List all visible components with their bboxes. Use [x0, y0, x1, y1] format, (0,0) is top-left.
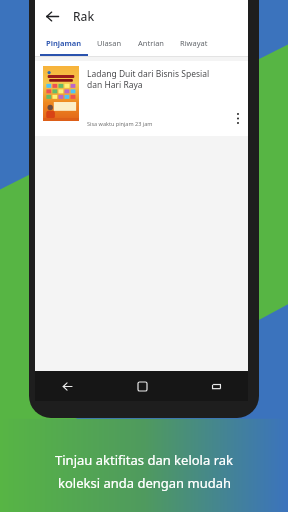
button[interactable]: Ladang Duit dari Bisnis Spesial dan Hari… — [35, 61, 248, 136]
button[interactable]: Home — [132, 376, 152, 396]
staticText: Sisa waktu pinjam 23 jam — [87, 120, 153, 127]
staticText: Antrian — [138, 38, 165, 48]
staticText: Rak — [73, 8, 95, 24]
button[interactable]: Back — [40, 4, 64, 28]
button[interactable]: Back — [57, 376, 77, 396]
button[interactable]: Riwayat — [172, 32, 215, 54]
staticText: koleksi anda dengan mudah — [58, 474, 231, 492]
button[interactable]: More options — [228, 61, 248, 136]
button[interactable]: Pinjaman — [39, 32, 89, 54]
staticText: Pinjaman — [46, 38, 82, 48]
button[interactable]: Antrian — [130, 32, 172, 54]
staticText: Ulasan — [97, 38, 122, 48]
staticText: Ladang Duit dari Bisnis Spesial dan Hari… — [87, 68, 226, 90]
button[interactable]: Recent apps — [206, 376, 226, 396]
staticText: Tinjau aktifitas dan kelola rak — [55, 451, 233, 469]
staticText: Riwayat — [180, 38, 208, 48]
button[interactable]: Ulasan — [89, 32, 130, 54]
